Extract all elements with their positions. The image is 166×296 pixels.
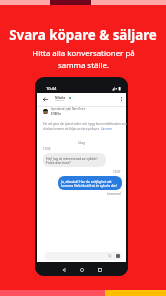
staticText: Nikola	[55, 96, 66, 100]
staticText: Hitta alla konversationer på samma ställ…	[32, 48, 135, 70]
staticText: Ja, absolut! Har du möjlighet att komma …	[61, 179, 117, 188]
staticText: Levererad	[107, 192, 121, 196]
button[interactable]: Home	[76, 264, 87, 275]
staticText: Idag	[37, 141, 126, 145]
staticText: 10:36	[43, 147, 51, 151]
staticText: 8 900 kr	[51, 112, 62, 116]
staticText: 10:37	[113, 170, 121, 174]
button[interactable]: Recent apps	[94, 264, 105, 275]
button[interactable]: More options	[116, 94, 126, 104]
button[interactable]	[44, 252, 122, 260]
button[interactable]: Specialized cykel Nero Retro	[37, 107, 126, 116]
staticText: Svara köpare & säljare	[9, 26, 157, 44]
staticText: För att göra din tjänst säker och trygg …	[43, 122, 127, 126]
button[interactable]: Hej! Jag är intresserad av cykeln! Finns…	[43, 153, 106, 167]
button[interactable]: Back	[58, 264, 69, 275]
staticText: skickas komma att följas av våra policye…	[43, 127, 101, 131]
staticText: 10:44	[46, 86, 57, 91]
staticText: Hej! Jag är intresserad av cykeln! Finns…	[46, 156, 98, 165]
staticText: Aktiv nu	[55, 99, 64, 102]
button[interactable]: Back	[40, 94, 50, 104]
staticText: Specialized cykel Nero Retro	[51, 107, 86, 111]
button[interactable]: Ja, absolut! Har du möjlighet att komma …	[58, 176, 122, 190]
button[interactable]: Läs mer	[101, 127, 112, 131]
